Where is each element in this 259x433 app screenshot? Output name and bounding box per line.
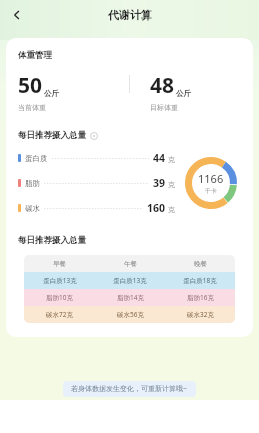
staticText: 50 (18, 71, 43, 100)
staticText: 1166 (198, 171, 224, 186)
staticText: 碳水 (25, 204, 40, 213)
staticText: 千卡 (205, 187, 217, 195)
staticText: 午餐 (124, 260, 137, 268)
staticText: 晚餐 (194, 260, 207, 268)
button[interactable]: 若身体数据发生变化，可重新计算哦~ (63, 381, 196, 397)
staticText: 39 (153, 176, 166, 190)
button[interactable]: Back (4, 2, 30, 28)
staticText: 公斤 (176, 89, 191, 98)
staticText: 每日推荐摄入总量 (18, 130, 86, 141)
staticText: 蛋白质18克 (183, 276, 217, 285)
staticText: 脂肪14克 (117, 293, 144, 302)
staticText: 公斤 (44, 89, 59, 98)
staticText: 早餐 (53, 260, 66, 268)
staticText: 蛋白质 (25, 154, 48, 163)
staticText: 克 (168, 205, 175, 214)
staticText: 蛋白质13克 (43, 276, 77, 285)
staticText: 44 (153, 151, 166, 165)
staticText: 代谢计算 (108, 8, 152, 22)
staticText: 脂肪10克 (46, 293, 73, 302)
staticText: 体重管理 (18, 50, 52, 61)
staticText: 若身体数据发生变化，可重新计算哦~ (71, 384, 188, 394)
staticText: 目标体重 (150, 103, 178, 112)
staticText: 蛋白质13克 (113, 276, 147, 285)
staticText: 碳水72克 (46, 310, 73, 319)
staticText: 160 (147, 201, 166, 215)
staticText: 克 (168, 155, 175, 164)
staticText: 脂肪 (25, 179, 40, 188)
staticText: 克 (168, 180, 175, 189)
staticText: 每日推荐摄入总量 (18, 235, 86, 246)
staticText: 碳水56克 (117, 310, 144, 319)
staticText: 碳水32克 (187, 310, 214, 319)
staticText: 脂肪16克 (187, 293, 214, 302)
staticText: 当前体重 (18, 103, 46, 112)
staticText: 48 (150, 71, 175, 100)
button[interactable]: 说明 (89, 131, 98, 140)
